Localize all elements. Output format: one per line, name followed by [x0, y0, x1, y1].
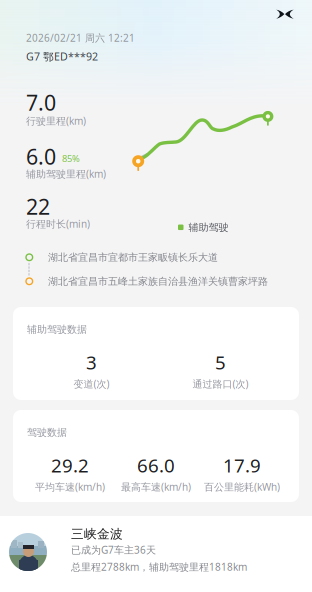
staticText: 3 [86, 350, 97, 375]
staticText: 总里程2788km，辅助驾驶里程1818km [71, 560, 247, 574]
staticText: 变道(次) [73, 377, 109, 391]
staticText: 7.0 [26, 88, 56, 117]
staticText: 85% [62, 152, 80, 165]
staticText: 5 [215, 350, 226, 375]
staticText: 百公里能耗(kWh) [204, 480, 280, 494]
staticText: 66.0 [137, 453, 175, 478]
staticText: 6.0 [26, 142, 56, 171]
staticText: G7 鄂ED***92 [26, 49, 98, 64]
staticText: 湖北省宜昌市五峰土家族自治县渔洋关镇曹家坪路 [48, 275, 268, 288]
staticText: 2026/02/21 周六 12:21 [26, 31, 135, 45]
staticText: 辅助驾驶 [188, 221, 228, 234]
staticText: 22 [26, 192, 50, 221]
staticText: 通过路口(次) [192, 377, 248, 391]
staticText: 湖北省宜昌市宜都市王家畈镇长乐大道 [48, 251, 218, 264]
staticText: 平均车速(km/h) [35, 480, 105, 494]
staticText: 行程时长(min) [26, 217, 90, 231]
staticText: 行驶里程(km) [26, 114, 86, 128]
staticText: 三峡金波 [71, 526, 123, 542]
staticText: 29.2 [51, 453, 89, 478]
staticText: 辅助驾驶里程(km) [26, 167, 106, 181]
button[interactable]: Share [269, 0, 301, 29]
staticText: 辅助驾驶数据 [27, 323, 87, 336]
button[interactable]: 三峡金波 [0, 516, 312, 592]
staticText: 17.9 [223, 453, 261, 478]
staticText: 已成为G7车主36天 [71, 543, 156, 557]
staticText: 驾驶数据 [27, 426, 67, 439]
staticText: 最高车速(km/h) [121, 480, 191, 494]
